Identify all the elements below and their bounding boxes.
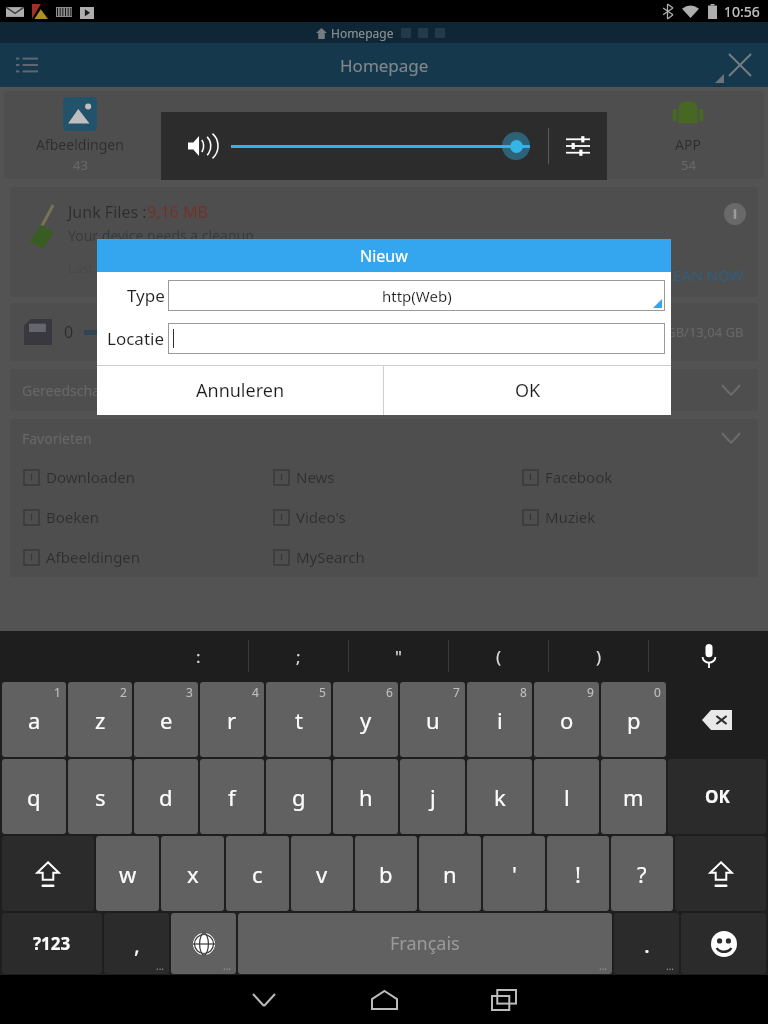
staticText: ( (496, 645, 502, 668)
button[interactable]: l (534, 759, 599, 834)
staticText: Downloaden (46, 467, 136, 487)
button[interactable]: " (349, 631, 448, 681)
staticText: 9 (587, 684, 594, 700)
button[interactable]: Shortcut (156, 91, 308, 179)
button[interactable]: News (274, 457, 509, 497)
button[interactable]: a (2, 682, 66, 757)
button[interactable]: u (400, 682, 465, 757)
button[interactable]: s (68, 759, 132, 834)
button[interactable]: Backspace (668, 682, 766, 757)
button[interactable]: Shortcut (460, 91, 612, 179)
button[interactable]: Video's (274, 497, 509, 537)
button[interactable]: Home (349, 980, 419, 1020)
button[interactable]: Français (238, 913, 612, 974)
button[interactable]: v (291, 836, 353, 911)
staticText: 6 (386, 684, 393, 700)
staticText: APP (675, 135, 701, 154)
staticText: ?123 (33, 932, 71, 955)
staticText: , (134, 929, 140, 959)
staticText: h (359, 782, 373, 812)
button[interactable]: e (134, 682, 198, 757)
button[interactable]: o (534, 682, 599, 757)
staticText: w (119, 859, 137, 889)
button[interactable]: ; (249, 631, 348, 681)
staticText: ... (223, 959, 232, 973)
button[interactable]: b (355, 836, 417, 911)
staticText: " (395, 645, 402, 668)
staticText: s (95, 782, 106, 812)
button[interactable]: Afbeeldingen (4, 91, 156, 179)
button[interactable]: i (467, 682, 532, 757)
staticText: f (228, 782, 236, 812)
button[interactable]: q (2, 759, 66, 834)
button[interactable]: CLEAN NOW (656, 265, 744, 285)
button[interactable]: ( (449, 631, 548, 681)
button[interactable]: Volume (183, 129, 217, 163)
button[interactable]: APP (612, 91, 764, 179)
button[interactable]: h (333, 759, 398, 834)
button[interactable]: x (161, 836, 224, 911)
button[interactable]: ? (611, 836, 673, 911)
button[interactable]: Info (724, 203, 746, 225)
button[interactable]: n (419, 836, 481, 911)
button[interactable]: p (601, 682, 666, 757)
staticText: p (627, 705, 641, 735)
button[interactable]: Annuleren (97, 366, 383, 415)
staticText: Facebook (545, 467, 613, 487)
button[interactable]: Facebook (523, 457, 758, 497)
staticText: o (560, 705, 574, 735)
button[interactable] (168, 323, 665, 354)
button[interactable]: z (68, 682, 132, 757)
staticText: . (644, 929, 650, 959)
staticText: Homepage (340, 54, 429, 77)
button[interactable]: Voice input (649, 631, 768, 681)
button[interactable]: Boeken (24, 497, 260, 537)
button[interactable]: Gereedschappen (10, 369, 758, 411)
button[interactable]: Afbeeldingen (24, 537, 260, 577)
button[interactable]: ) (549, 631, 648, 681)
staticText: 43 (73, 156, 88, 174)
button[interactable]: Recent apps (469, 980, 539, 1020)
staticText: Français (390, 931, 460, 956)
button[interactable]: Muziek (523, 497, 758, 537)
button[interactable]: f (200, 759, 264, 834)
button[interactable]: , (104, 913, 169, 974)
button[interactable]: Sound settings (549, 117, 607, 175)
button[interactable]: t (266, 682, 331, 757)
staticText: MySearch (296, 547, 365, 567)
button[interactable]: Menu (10, 48, 44, 82)
button[interactable]: ?123 (2, 913, 102, 974)
staticText: 1 (54, 684, 61, 700)
button[interactable]: ! (547, 836, 609, 911)
button[interactable]: Close (720, 45, 760, 85)
button[interactable]: Shift (675, 836, 766, 911)
staticText: Nieuw (360, 245, 408, 267)
staticText: 5 (319, 684, 326, 700)
button[interactable]: OK (384, 366, 671, 415)
button[interactable]: k (467, 759, 532, 834)
button[interactable]: m (601, 759, 666, 834)
button[interactable]: ' (483, 836, 545, 911)
button[interactable]: j (400, 759, 465, 834)
button[interactable]: d (134, 759, 198, 834)
button[interactable]: Hide keyboard (229, 980, 299, 1020)
staticText: u (426, 705, 440, 735)
staticText: 4,31 GB/13,04 GB (637, 323, 744, 341)
button[interactable]: w (96, 836, 159, 911)
button[interactable]: . (614, 913, 679, 974)
button[interactable]: Emoji (681, 913, 766, 974)
button[interactable]: Change language (171, 913, 236, 974)
button[interactable]: OK (668, 759, 766, 834)
button[interactable]: g (266, 759, 331, 834)
button[interactable]: y (333, 682, 398, 757)
staticText: Your device needs a cleanup (68, 226, 254, 245)
button[interactable]: : (149, 631, 248, 681)
button[interactable]: r (200, 682, 264, 757)
staticText: Favorieten (22, 429, 92, 448)
button[interactable]: Shift (2, 836, 94, 911)
button[interactable]: http(Web) (168, 280, 665, 311)
button[interactable]: Downloaden (24, 457, 260, 497)
button[interactable]: MySearch (274, 537, 509, 577)
button[interactable]: c (226, 836, 289, 911)
button[interactable]: Shortcut (308, 91, 460, 179)
